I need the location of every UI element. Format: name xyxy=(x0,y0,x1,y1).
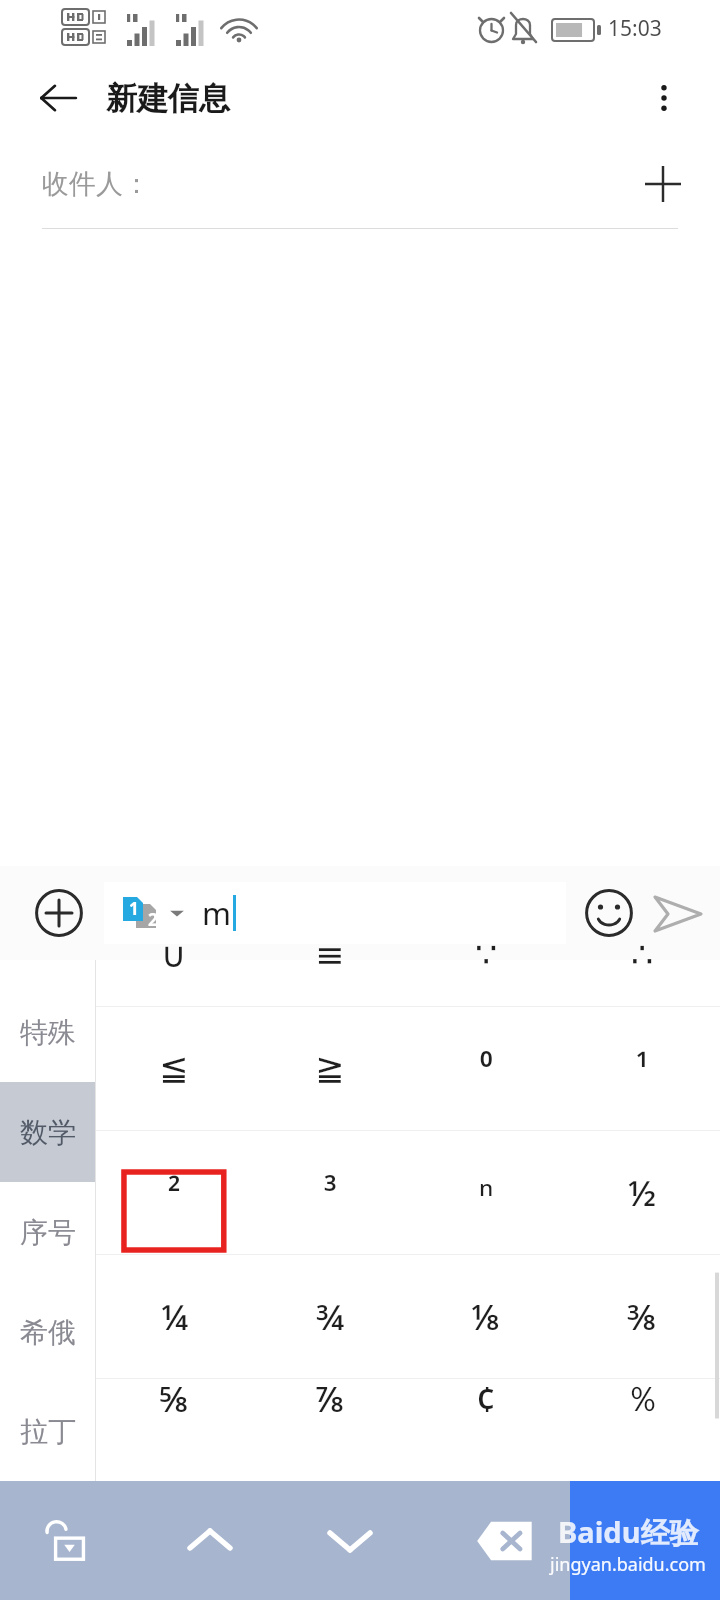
staticText: ½ xyxy=(628,1169,657,1217)
staticText: 1 xyxy=(129,897,139,920)
button[interactable]: ∴ xyxy=(564,960,720,1006)
button[interactable]: ¹ xyxy=(564,1007,720,1130)
staticText: ≡ xyxy=(315,935,345,976)
staticText: ⅛ xyxy=(471,1293,501,1341)
staticText: ∵ xyxy=(475,935,498,976)
button[interactable]: ¢ xyxy=(408,1379,564,1431)
button[interactable]: ⅝ xyxy=(96,1379,252,1431)
button[interactable]: ² xyxy=(96,1131,252,1254)
staticText: ¾ xyxy=(316,1293,345,1341)
staticText: ² xyxy=(168,1169,181,1217)
button[interactable]: Add recipient xyxy=(632,153,694,215)
staticText: ¢ xyxy=(476,1375,497,1423)
button[interactable]: 特殊 xyxy=(0,982,95,1082)
button[interactable]: Lock xyxy=(0,1481,140,1600)
staticText: Baidu经验 xyxy=(558,1512,699,1552)
button[interactable]: Attach xyxy=(26,880,92,946)
button[interactable]: ¾ xyxy=(252,1255,408,1378)
staticText: ⅜ xyxy=(627,1293,657,1341)
staticText: 收件人： xyxy=(42,167,150,201)
button[interactable]: ⅛ xyxy=(408,1255,564,1378)
button[interactable]: ⁰ xyxy=(408,1007,564,1130)
staticText: jingyan.baidu.com xyxy=(550,1552,706,1577)
staticText: ³ xyxy=(324,1169,337,1217)
staticText: ⁰ xyxy=(480,1045,493,1093)
button[interactable]: ¼ xyxy=(96,1255,252,1378)
button[interactable]: ⅜ xyxy=(564,1255,720,1378)
staticText: 拉丁 xyxy=(20,1414,76,1449)
staticText: ≦ xyxy=(159,1048,189,1089)
button[interactable]: ³ xyxy=(252,1131,408,1254)
staticText: ⁿ xyxy=(479,1169,494,1217)
button[interactable]: Emoji xyxy=(576,880,642,946)
staticText: 15:03 xyxy=(608,14,662,43)
button[interactable]: ≡ xyxy=(252,960,408,1006)
button[interactable]: ½ xyxy=(564,1131,720,1254)
button[interactable]: Next page xyxy=(280,1481,420,1600)
button[interactable]: 数学 xyxy=(0,1082,95,1182)
staticText: ¼ xyxy=(161,1293,188,1341)
button[interactable]: 希俄 xyxy=(0,1282,95,1382)
button[interactable]: ％ xyxy=(564,1379,720,1431)
button[interactable]: ⁿ xyxy=(408,1131,564,1254)
staticText: 希俄 xyxy=(20,1315,76,1350)
button[interactable]: ≦ xyxy=(96,1007,252,1130)
staticText: 新建信息 xyxy=(106,79,230,118)
staticText: ≧ xyxy=(315,1048,345,1089)
button[interactable]: Previous page xyxy=(140,1481,280,1600)
button[interactable]: Delete xyxy=(440,1481,570,1600)
button[interactable]: Send xyxy=(642,877,714,949)
staticText: ∪ xyxy=(161,935,187,976)
button[interactable]: 序号 xyxy=(0,1182,95,1282)
staticText: 特殊 xyxy=(20,1015,76,1050)
staticText: 2 xyxy=(148,908,158,931)
staticText: 数学 xyxy=(20,1115,76,1150)
staticText: ％ xyxy=(625,1377,660,1421)
button[interactable]: ∪ xyxy=(96,960,252,1006)
staticText: 序号 xyxy=(20,1215,76,1250)
button[interactable]: ∵ xyxy=(408,960,564,1006)
button[interactable]: More options xyxy=(634,68,694,128)
staticText: ∴ xyxy=(631,935,654,976)
button[interactable]: ⅞ xyxy=(252,1379,408,1431)
button[interactable]: 1 xyxy=(104,882,566,944)
staticText: ¹ xyxy=(636,1045,649,1093)
staticText: m xyxy=(202,892,231,934)
staticText: ⅝ xyxy=(159,1375,189,1423)
button[interactable]: 拉丁 xyxy=(0,1382,95,1481)
button[interactable]: ≧ xyxy=(252,1007,408,1130)
button[interactable]: Back xyxy=(26,66,90,130)
staticText: ⅞ xyxy=(315,1375,345,1423)
